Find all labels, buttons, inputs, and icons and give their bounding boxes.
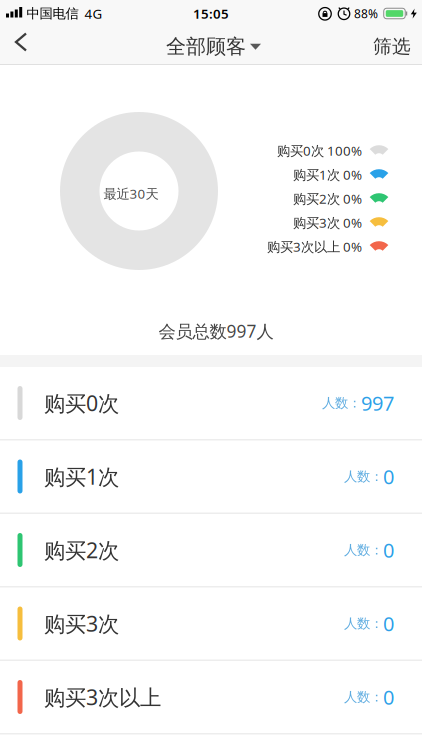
staticText: 997 [361, 390, 394, 416]
staticText: 筛选 [373, 35, 411, 58]
staticText: 0 [383, 463, 394, 490]
button[interactable]: 购买2次 [0, 514, 422, 587]
staticText: 人数： [344, 468, 383, 485]
staticText: 购买2次 [44, 536, 119, 564]
staticText: 0 [383, 610, 394, 637]
button[interactable]: 购买3次以上 [0, 661, 422, 734]
staticText: 人数： [344, 542, 383, 558]
staticText: 购买1次 0% [293, 166, 362, 183]
staticText: 购买3次以上 [44, 683, 161, 711]
button[interactable]: 购买1次 [0, 440, 422, 514]
staticText: 最近30天 [103, 185, 158, 202]
staticText: 88% [354, 5, 378, 21]
staticText: 4G [84, 5, 102, 22]
staticText: 购买3次 0% [293, 214, 362, 231]
button[interactable]: 筛选 [373, 35, 411, 58]
staticText: 购买1次 [44, 462, 119, 491]
staticText: 人数： [322, 395, 361, 411]
staticText: 人数： [344, 689, 383, 705]
button[interactable]: 购买3次 [0, 587, 422, 661]
staticText: 会员总数997人 [158, 319, 273, 342]
staticText: 购买3次 [44, 609, 119, 638]
button[interactable] [0, 25, 38, 58]
staticText: 0 [383, 537, 394, 563]
staticText: 购买0次 100% [277, 142, 362, 159]
staticText: 人数： [344, 615, 383, 632]
button[interactable]: 全部顾客 [166, 34, 261, 59]
staticText: 15:05 [193, 5, 229, 22]
staticText: 中国电信 [26, 5, 78, 22]
staticText: 购买0次 [44, 389, 119, 417]
staticText: 0 [383, 684, 394, 710]
staticText: 购买3次以上 0% [267, 238, 362, 255]
staticText: 全部顾客 [166, 34, 246, 59]
staticText: 购买2次 0% [293, 190, 362, 207]
button[interactable]: 购买0次 [0, 367, 422, 440]
